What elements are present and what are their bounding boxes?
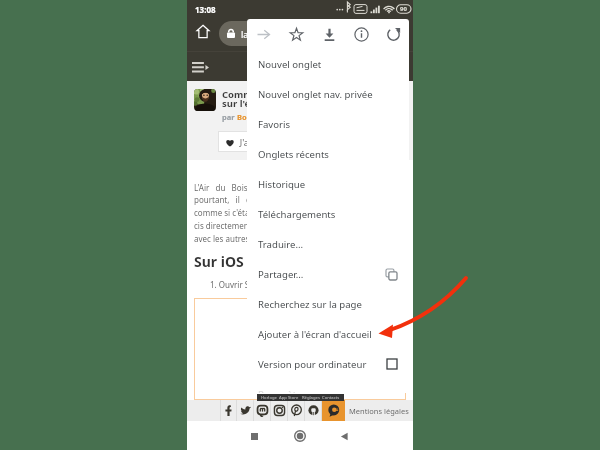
button[interactable]: Site menu xyxy=(189,56,211,78)
button[interactable]: Mentions légales xyxy=(345,400,413,421)
button[interactable]: Reload xyxy=(377,19,409,49)
button[interactable]: GitHub xyxy=(305,400,322,421)
staticText: Recherchez sur la page xyxy=(258,298,362,311)
staticText: Contacts xyxy=(322,395,340,401)
staticText: 90 xyxy=(400,5,407,13)
staticText: Onglets récents xyxy=(258,148,329,161)
button[interactable]: Back xyxy=(333,425,355,447)
button[interactable]: Download xyxy=(313,19,345,49)
staticText: Historique xyxy=(258,178,306,191)
staticText: Favoris xyxy=(258,118,291,131)
staticText: par xyxy=(222,112,237,122)
staticText: 1. Ouvrir Safari xyxy=(210,279,267,290)
button[interactable]: Contact xyxy=(322,400,345,421)
staticText: Boris Schapira xyxy=(237,112,291,122)
staticText: Téléchargements xyxy=(258,208,336,221)
staticText: Partager… xyxy=(258,268,304,281)
button[interactable]: Page info xyxy=(345,19,377,49)
button[interactable]: Onglets récents xyxy=(247,139,409,169)
staticText: Ajouter à l'écran d'accueil xyxy=(258,328,372,341)
staticText: J'aime xyxy=(235,136,265,148)
staticText: Mentions légales xyxy=(349,406,409,416)
button[interactable]: Ajouter à l'écran d'accueil xyxy=(247,319,409,349)
button[interactable]: Traduire… xyxy=(247,229,409,259)
button[interactable]: Facebook xyxy=(220,400,237,421)
staticText: 13:08 xyxy=(195,4,216,15)
staticText: Horloge xyxy=(261,395,277,401)
staticText: Traduire… xyxy=(258,238,304,251)
button[interactable]: Nouvel onglet xyxy=(247,49,409,79)
button[interactable]: Recents xyxy=(243,425,265,447)
button[interactable]: Twitter xyxy=(237,400,254,421)
staticText: Réglages xyxy=(302,395,320,401)
button[interactable]: Mastodon xyxy=(254,400,271,421)
button[interactable]: la xyxy=(219,21,409,46)
button[interactable]: Téléchargements xyxy=(247,199,409,229)
staticText: Sur iOS xyxy=(194,252,244,271)
button[interactable]: Home xyxy=(190,18,216,44)
staticText: Nouvel onglet xyxy=(258,58,322,71)
button[interactable]: Partager… xyxy=(247,259,409,289)
button[interactable]: Pinterest xyxy=(288,400,305,421)
button[interactable]: Recherchez sur la page xyxy=(247,289,409,319)
staticText: App Store xyxy=(279,395,299,401)
button[interactable]: Bookmark xyxy=(280,19,313,49)
button[interactable]: Nouvel onglet nav. privée xyxy=(247,79,409,109)
button[interactable]: Instagram xyxy=(271,400,288,421)
staticText: Nouvel onglet nav. privée xyxy=(258,88,373,101)
staticText: Version pour ordinateur xyxy=(258,358,367,371)
staticText: Paramètres xyxy=(258,388,310,393)
button[interactable]: Historique xyxy=(247,169,409,199)
button[interactable]: Forward xyxy=(247,19,280,49)
button[interactable]: Favoris xyxy=(247,109,409,139)
staticText: Comment installer ce site sur l'écran d'… xyxy=(222,88,344,109)
button[interactable]: Version pour ordinateur xyxy=(247,349,409,379)
button[interactable]: Home xyxy=(289,425,311,447)
button[interactable]: J'aime xyxy=(218,131,280,152)
staticText: la xyxy=(241,28,249,40)
staticText: L'Air du Bois est un site web et pourtan… xyxy=(194,182,406,245)
